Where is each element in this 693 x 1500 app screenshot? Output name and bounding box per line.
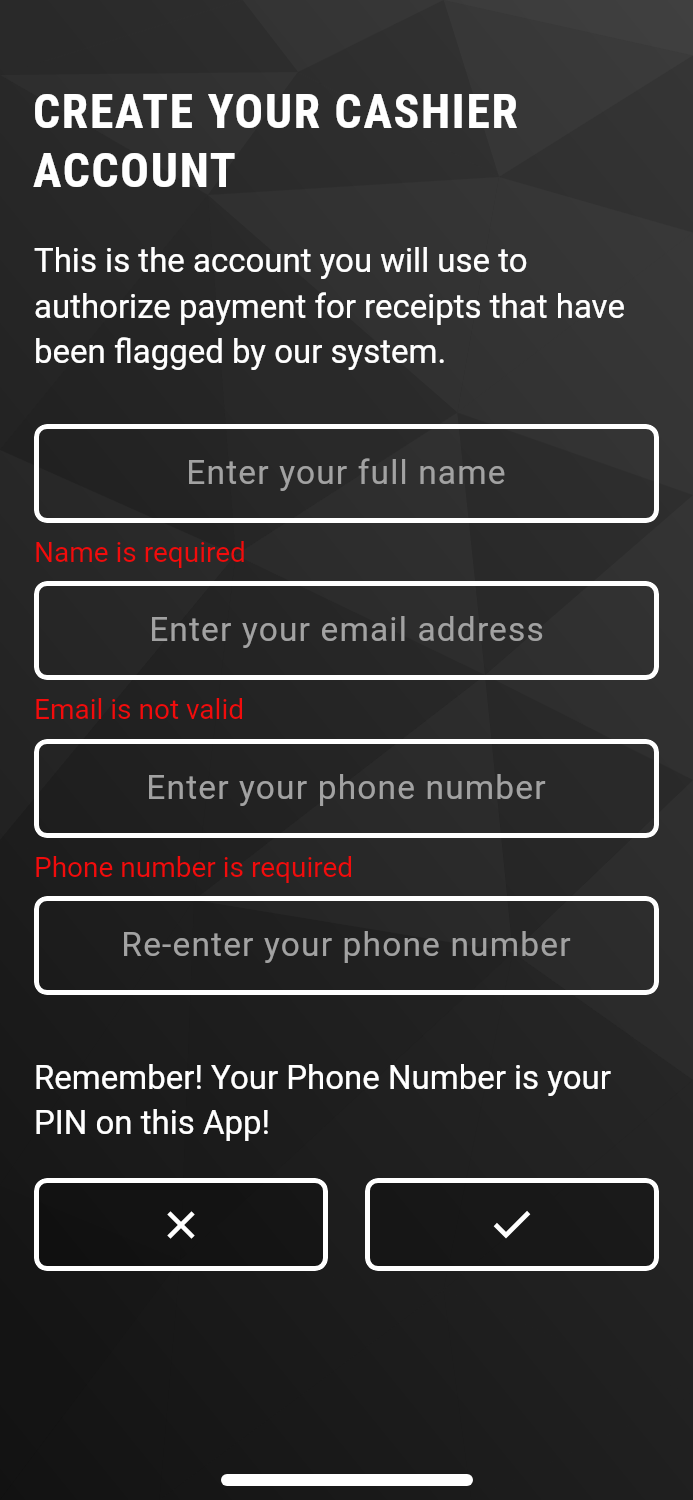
- button[interactable]: Confirm: [365, 1178, 659, 1271]
- button[interactable]: Re-enter your phone number: [34, 896, 659, 995]
- button[interactable]: Cancel: [34, 1178, 328, 1271]
- staticText: ACCOUNT: [33, 143, 238, 199]
- staticText: Enter your phone number: [146, 768, 547, 807]
- button[interactable]: Enter your email address: [34, 581, 659, 680]
- staticText: Phone number is required: [34, 851, 354, 884]
- button[interactable]: Enter your phone number: [34, 739, 659, 838]
- staticText: Re-enter your phone number: [121, 925, 572, 964]
- staticText: PIN on this App!: [34, 1103, 271, 1142]
- staticText: Name is required: [34, 536, 246, 569]
- staticText: Enter your full name: [186, 453, 507, 492]
- staticText: This is the account you will use to: [34, 241, 528, 280]
- button[interactable]: Enter your full name: [34, 424, 659, 523]
- staticText: Enter your email address: [149, 610, 545, 649]
- staticText: been flagged by our system.: [34, 332, 447, 371]
- staticText: authorize payment for receipts that have: [34, 287, 625, 326]
- staticText: Email is not valid: [34, 693, 244, 726]
- staticText: CREATE YOUR CASHIER: [33, 84, 520, 140]
- staticText: Remember! Your Phone Number is your: [34, 1058, 611, 1097]
